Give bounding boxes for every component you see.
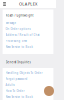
staticText: Adults <box>6 83 15 87</box>
button[interactable]: New Service to Book <box>6 94 50 100</box>
button[interactable]: Message <box>6 20 50 26</box>
button[interactable]: Adults <box>6 82 50 88</box>
staticText: Reach / Lightweight <box>6 14 34 17</box>
button[interactable]: New Service to Book <box>6 44 50 50</box>
button[interactable]: How To Order <box>6 88 50 94</box>
staticText: How To Order <box>6 89 25 93</box>
button[interactable]: On Order options <box>6 26 50 32</box>
button[interactable]: Processing Time <box>6 38 50 44</box>
button[interactable]: Chat with us <box>44 86 54 96</box>
staticText: On Order options <box>6 27 31 31</box>
staticText: Processing Time <box>6 39 28 43</box>
staticText: New Service to Book <box>6 45 33 49</box>
staticText: New Service to Book <box>6 95 33 99</box>
staticText: Message <box>6 21 17 25</box>
staticText: Address / Result of Chat <box>6 33 40 37</box>
staticText: OLAPLEX <box>19 1 37 7</box>
button[interactable]: Menu <box>0 0 9 8</box>
staticText: Handling Objects To Order <box>6 71 43 75</box>
button[interactable]: Forgot password <box>6 76 50 82</box>
staticText: General Inquiries <box>6 60 31 64</box>
staticText: Forgot password <box>6 77 28 81</box>
button[interactable]: Handling Objects To Order <box>6 70 50 76</box>
button[interactable]: Address / Result of Chat <box>6 32 50 38</box>
